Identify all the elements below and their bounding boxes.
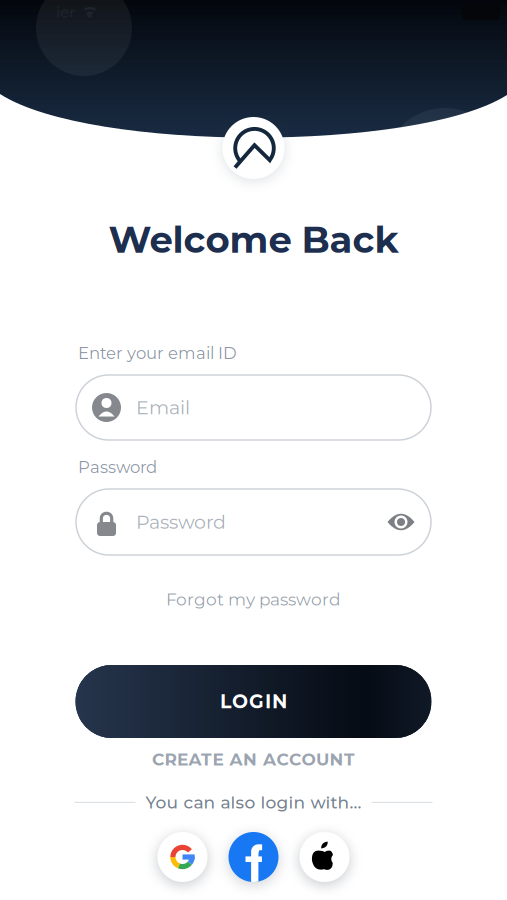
button[interactable]: Show password	[387, 513, 431, 531]
button[interactable]: Log in with Google	[157, 832, 207, 882]
staticText: CREATE AN ACCOUNT	[152, 749, 355, 770]
button[interactable]: CREATE AN ACCOUNT	[152, 749, 355, 770]
button[interactable]: LOGIN	[75, 665, 431, 738]
staticText: Enter your email ID	[78, 343, 237, 363]
button[interactable]: Forgot my password	[166, 589, 341, 610]
staticText: Email	[136, 396, 190, 419]
button[interactable]: Log in with Facebook	[228, 832, 278, 882]
staticText: You can also login with...	[145, 792, 361, 813]
staticText: LOGIN	[220, 690, 287, 713]
staticText: Welcome Back	[108, 217, 398, 262]
staticText: Forgot my password	[166, 589, 341, 610]
staticText: ier	[56, 3, 75, 21]
button[interactable]: Password	[76, 489, 431, 555]
button[interactable]: Email	[76, 375, 431, 440]
staticText: Password	[78, 457, 157, 477]
button[interactable]: Log in with Apple	[299, 832, 349, 882]
staticText: Password	[136, 510, 226, 534]
